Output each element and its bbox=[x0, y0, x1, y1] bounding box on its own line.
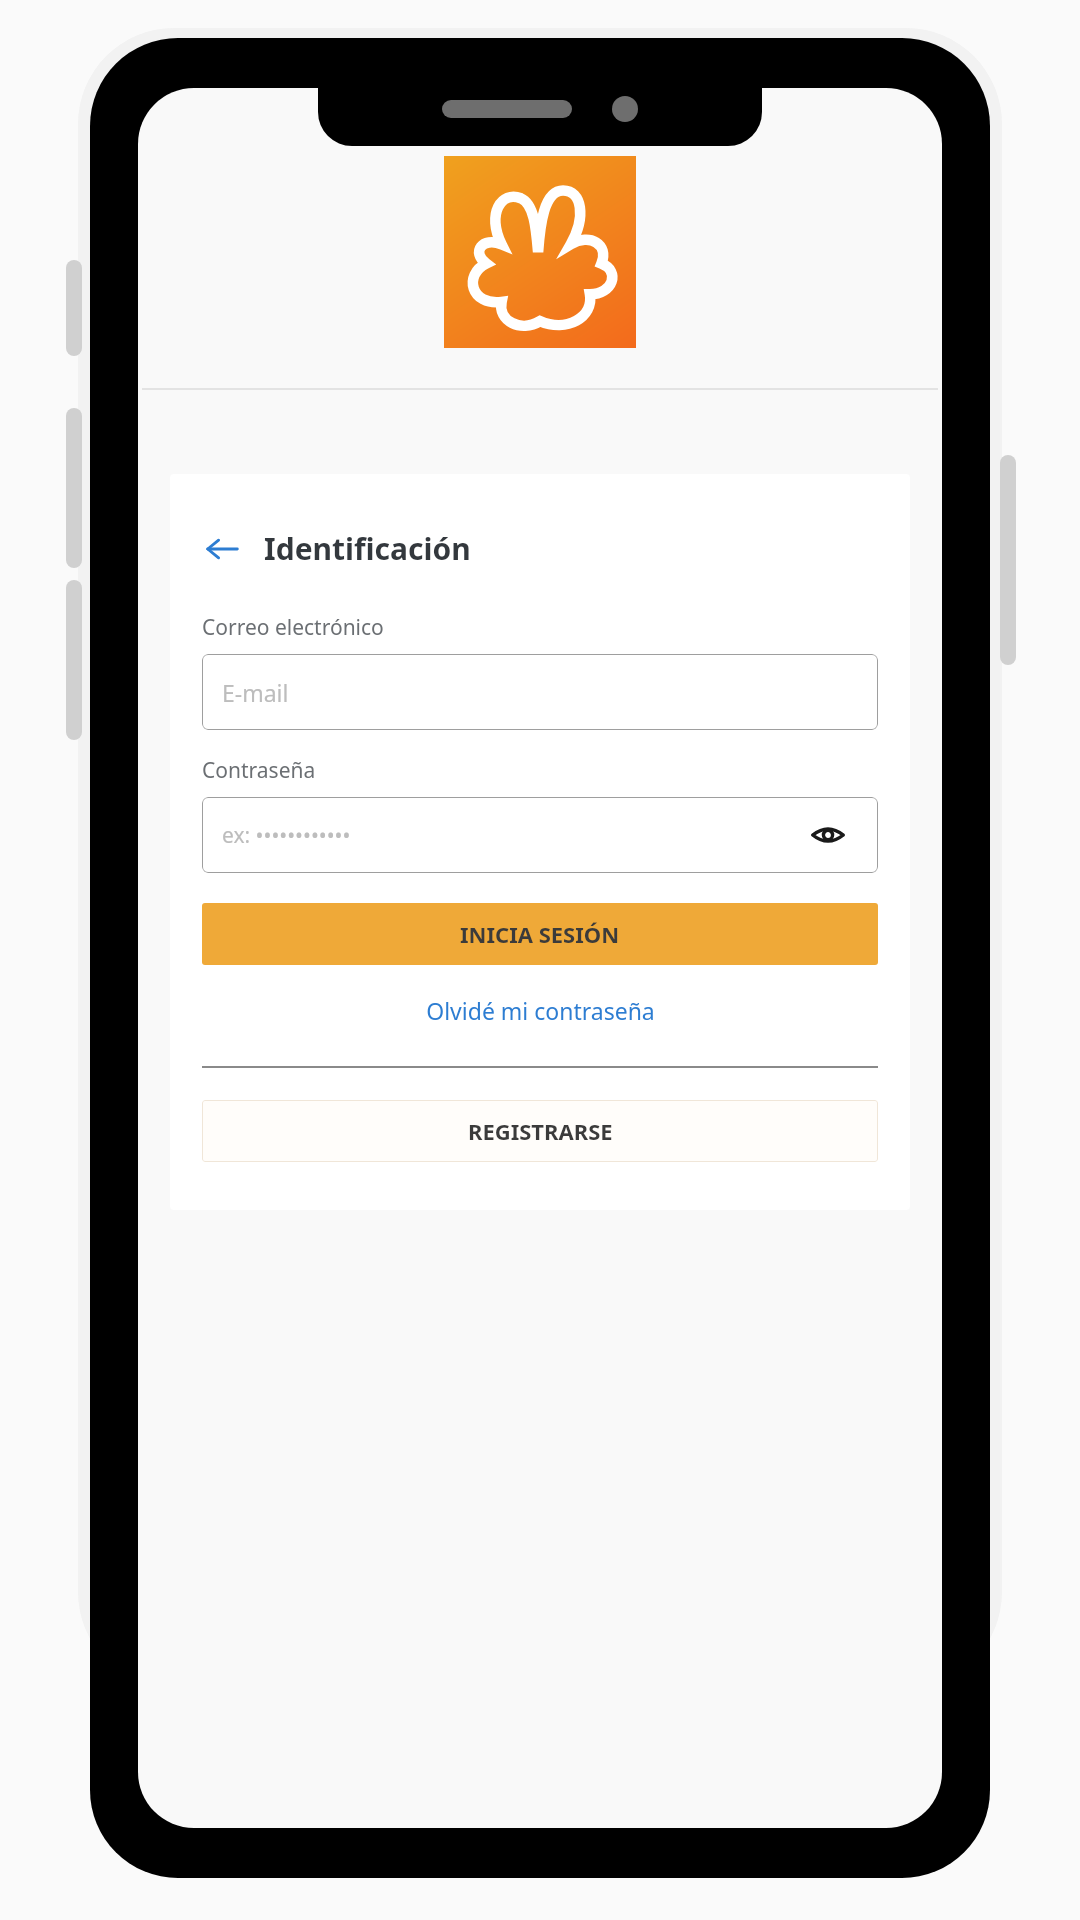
staticText: INICIA SESIÓN bbox=[460, 919, 620, 949]
staticText: Identificación bbox=[264, 528, 471, 569]
staticText: E-mail bbox=[222, 677, 289, 708]
staticText: Contraseña bbox=[202, 756, 316, 785]
button[interactable]: REGISTRARSE bbox=[202, 1100, 878, 1162]
other: Back bbox=[202, 529, 242, 569]
button[interactable]: Show password bbox=[804, 811, 852, 859]
button[interactable]: INICIA SESIÓN bbox=[202, 903, 878, 965]
button[interactable]: ex: •••••••••••• bbox=[202, 797, 878, 873]
staticText: ex: •••••••••••• bbox=[222, 821, 351, 850]
button[interactable]: Olvidé mi contraseña bbox=[202, 989, 878, 1032]
button[interactable]: Back bbox=[202, 522, 471, 575]
staticText: Correo electrónico bbox=[202, 613, 384, 642]
button[interactable]: E-mail bbox=[202, 654, 878, 730]
staticText: Olvidé mi contraseña bbox=[426, 995, 655, 1026]
staticText: REGISTRARSE bbox=[468, 1116, 613, 1146]
